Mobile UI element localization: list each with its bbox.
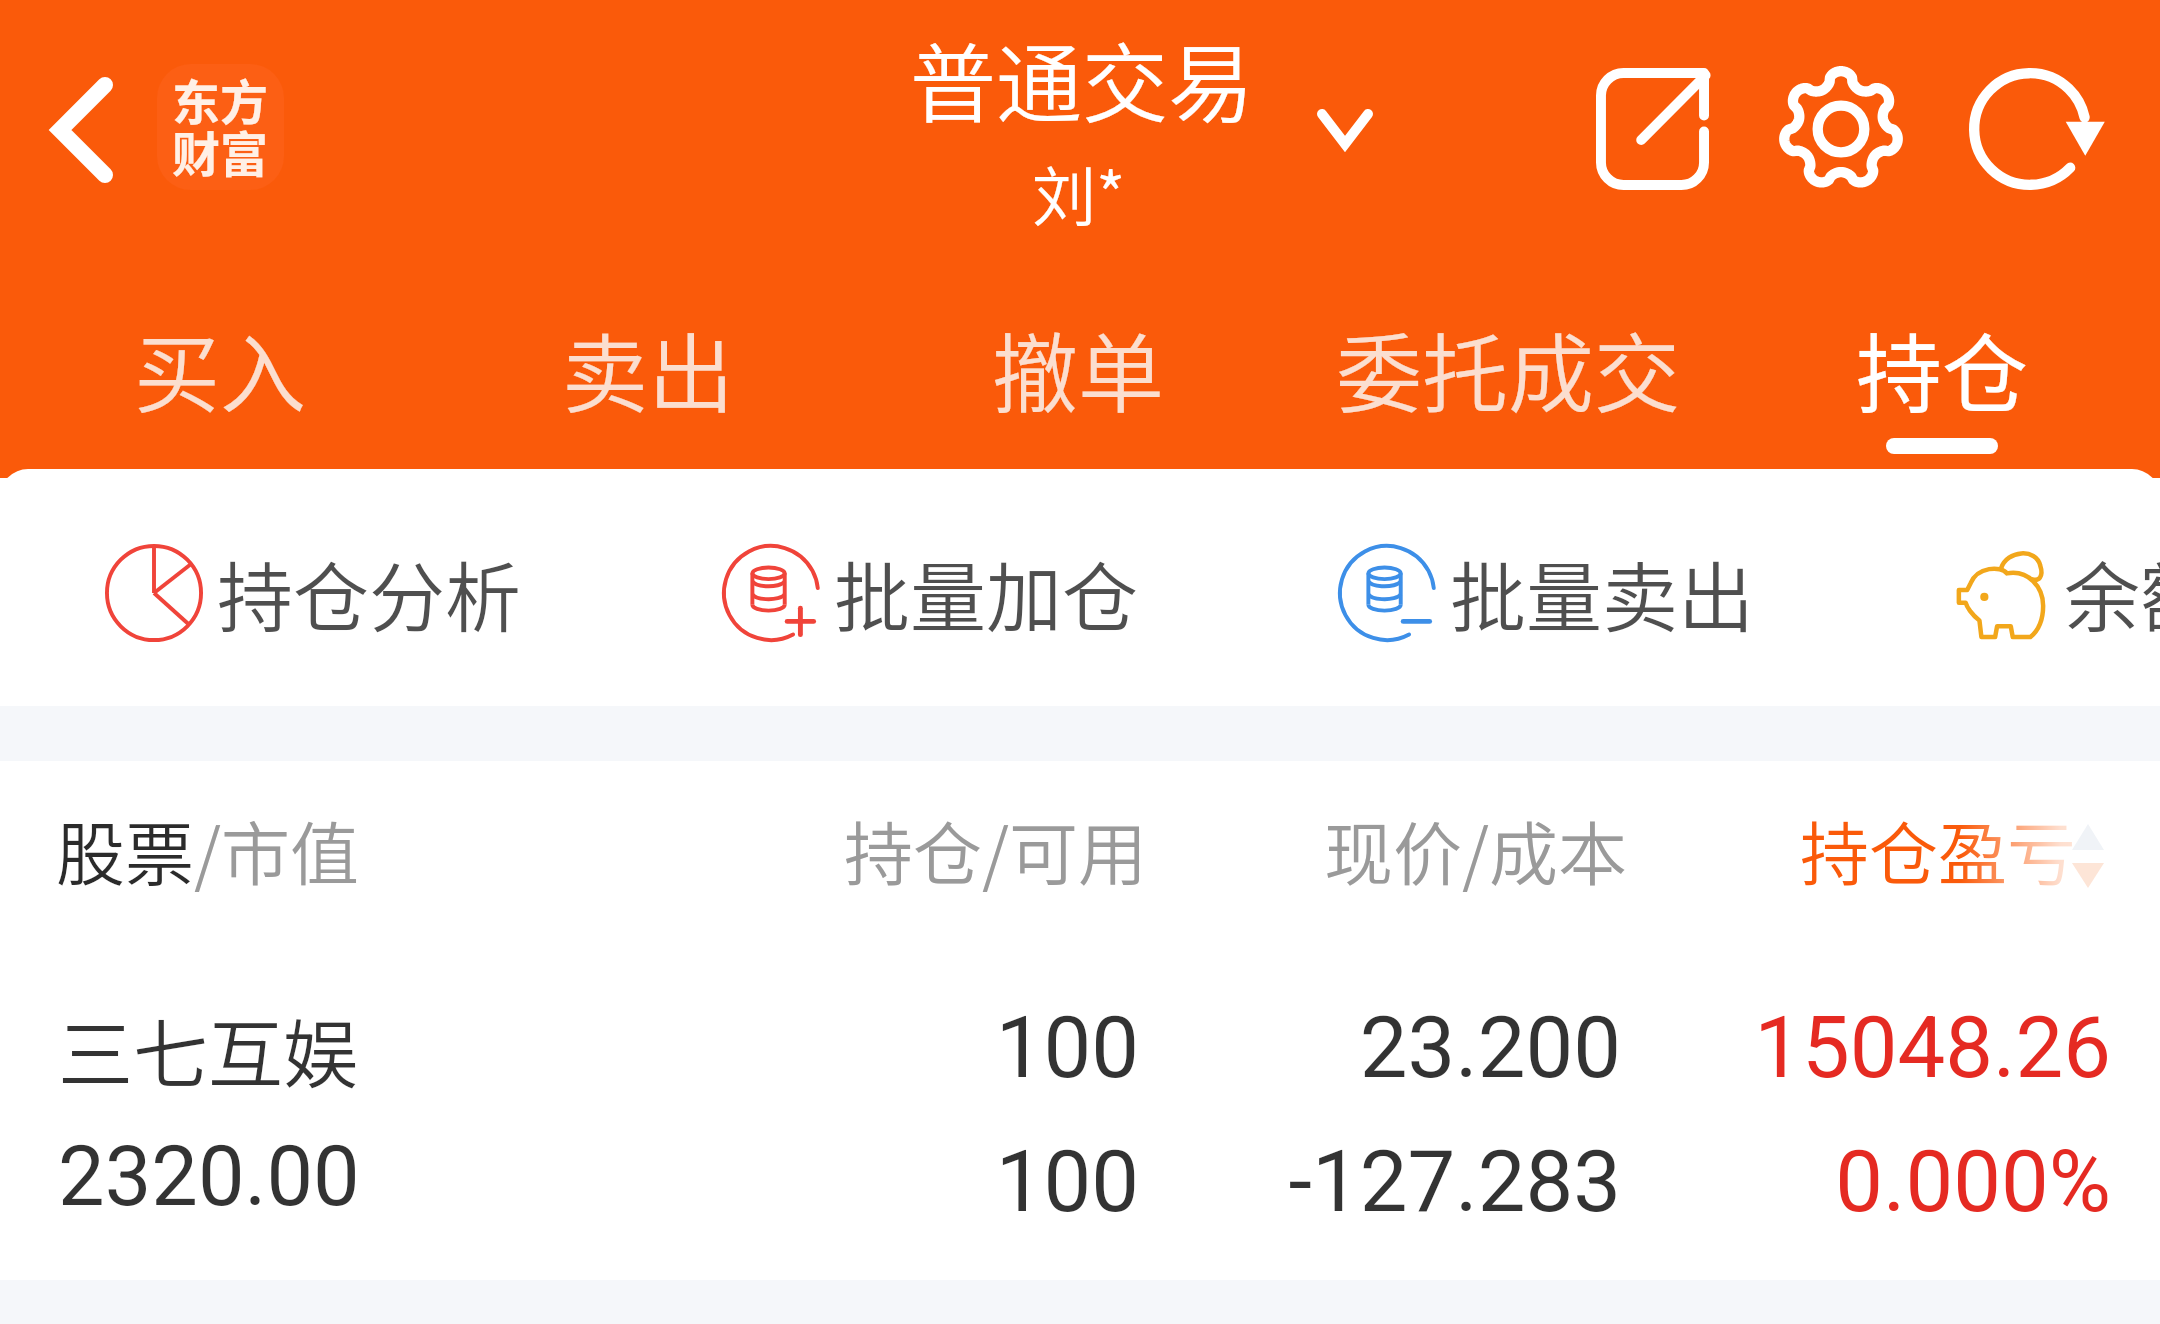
- staticText: 股票: [56, 800, 194, 892]
- staticText: 委托成交: [1336, 306, 1680, 431]
- button[interactable]: 现价/成本: [0, 800, 1628, 892]
- staticText: 普通交易: [910, 16, 1254, 141]
- button[interactable]: 批量卖出: [1316, 523, 1754, 663]
- button[interactable]: 撤单: [949, 296, 1207, 471]
- staticText: 23.200: [0, 998, 1621, 1098]
- button[interactable]: 批量加仓: [700, 523, 1138, 663]
- staticText: 0.000%: [0, 1132, 2111, 1232]
- staticText: 持仓盈亏: [1800, 800, 2076, 900]
- staticText: 撤单: [992, 306, 1164, 431]
- button[interactable]: Refresh: [1948, 45, 2124, 213]
- staticText: 东方: [172, 64, 269, 134]
- staticText: /市值: [194, 800, 360, 892]
- staticText: 卖出: [562, 306, 734, 431]
- staticText: 100: [0, 1132, 1139, 1232]
- button[interactable]: Share: [1570, 45, 1734, 213]
- button[interactable]: 三七互娱: [0, 960, 2160, 1280]
- staticText: 批量加仓: [834, 538, 1138, 648]
- staticText: 财富: [172, 116, 269, 186]
- staticText: 批量卖出: [1450, 538, 1754, 648]
- button[interactable]: 持仓/可用: [0, 800, 1148, 892]
- button[interactable]: 余额宝: [1930, 523, 2160, 663]
- staticText: 余额宝: [2064, 538, 2160, 648]
- staticText: 100: [0, 998, 1139, 1098]
- button[interactable]: Back: [20, 68, 144, 192]
- staticText: 现价/成本: [1324, 800, 1628, 892]
- button[interactable]: 持仓: [1813, 296, 2071, 471]
- button[interactable]: 卖出: [519, 296, 777, 471]
- button[interactable]: 股票: [56, 800, 360, 892]
- button[interactable]: 委托成交: [1295, 296, 1721, 471]
- button[interactable]: Settings: [1757, 45, 1925, 213]
- button[interactable]: 持仓分析: [83, 523, 521, 663]
- button[interactable]: 普通交易: [890, 10, 1410, 160]
- staticText: 持仓/可用: [844, 800, 1148, 892]
- button[interactable]: 买入: [91, 296, 349, 471]
- staticText: 持仓: [1856, 306, 2028, 431]
- staticText: 三七互娱: [58, 995, 359, 1104]
- staticText: 买入: [134, 306, 306, 431]
- button[interactable]: East Money: [157, 64, 284, 190]
- staticText: 2320.00: [58, 1128, 360, 1225]
- staticText: 15048.26: [0, 998, 2111, 1098]
- staticText: -127.283: [0, 1132, 1621, 1232]
- button[interactable]: Sort by profit: [2056, 810, 2120, 902]
- staticText: 持仓分析: [217, 538, 521, 648]
- staticText: 刘*: [1032, 146, 1126, 239]
